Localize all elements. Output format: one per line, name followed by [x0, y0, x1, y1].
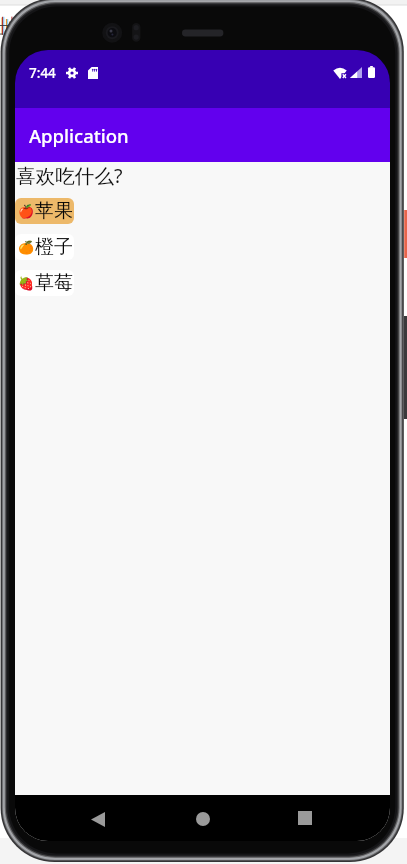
button[interactable]: 🍓 — [15, 270, 74, 296]
staticText: 喜欢吃什么? — [16, 162, 123, 189]
staticText: 橙子 — [35, 235, 73, 259]
staticText: 草莓 — [35, 271, 73, 295]
staticText: 🍓 — [18, 276, 35, 291]
staticText: 苹果 — [35, 199, 73, 223]
staticText: 7:44 — [29, 64, 56, 82]
staticText: Application — [29, 123, 129, 148]
button[interactable]: 🍊 — [15, 234, 74, 260]
staticText: 🍎 — [18, 204, 35, 219]
button[interactable]: Home — [196, 812, 210, 826]
button[interactable]: 🍎 — [15, 198, 74, 224]
button[interactable]: Back — [91, 812, 105, 827]
staticText: 🍊 — [18, 240, 35, 255]
